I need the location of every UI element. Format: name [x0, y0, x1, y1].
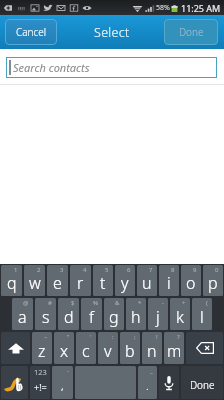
- button[interactable]: $: [58, 298, 79, 330]
- staticText: f: [89, 306, 94, 328]
- staticText: v: [104, 340, 112, 362]
- staticText: k: [176, 306, 184, 328]
- staticText: 4: [83, 266, 87, 274]
- button[interactable]: !: [142, 332, 162, 364]
- staticText: g: [109, 306, 119, 328]
- staticText: w: [29, 272, 41, 294]
- button[interactable]: &: [104, 298, 124, 330]
- staticText: !: [156, 333, 158, 341]
- staticText: ": [67, 333, 70, 341]
- staticText: 7: [149, 266, 153, 274]
- button[interactable]: 123: [30, 366, 50, 399]
- button[interactable]: +: [170, 298, 190, 330]
- staticText: :: [112, 333, 114, 341]
- staticText: 6: [127, 266, 131, 274]
- button[interactable]: @: [12, 298, 33, 330]
- staticText: 3: [60, 266, 64, 274]
- staticText: r: [77, 272, 84, 294]
- staticText: #: [48, 299, 52, 307]
- button[interactable]: 8: [159, 265, 179, 296]
- button[interactable]: _: [138, 366, 157, 399]
- staticText: j: [156, 306, 160, 328]
- staticText: ~: [44, 333, 48, 341]
- staticText: ;: [134, 333, 136, 341]
- staticText: e: [53, 272, 62, 294]
- button[interactable]: ?: [164, 332, 184, 364]
- button[interactable]: Done: [181, 366, 223, 399]
- staticText: 9: [193, 266, 197, 274]
- staticText: y: [121, 272, 129, 294]
- button[interactable]: Done: [164, 19, 218, 45]
- staticText: -: [67, 367, 69, 375]
- staticText: n: [147, 340, 157, 362]
- staticText: %: [93, 299, 98, 307]
- staticText: Select: [94, 24, 130, 41]
- staticText: +: [182, 299, 186, 307]
- button[interactable]: ': [76, 332, 96, 364]
- staticText: u: [142, 272, 152, 294]
- staticText: Search contacts: [13, 60, 90, 75]
- button[interactable]: ": [54, 332, 74, 364]
- staticText: q: [7, 272, 17, 294]
- staticText: t: [100, 272, 106, 294]
- button[interactable]: :: [98, 332, 118, 364]
- staticText: +!=: [34, 381, 47, 393]
- staticText: ': [90, 333, 92, 341]
- staticText: Done: [179, 25, 204, 39]
- staticText: z: [38, 340, 46, 362]
- button[interactable]: Voice input: [159, 366, 179, 399]
- staticText: a: [18, 306, 27, 328]
- staticText: m: [167, 340, 182, 362]
- staticText: *: [138, 299, 142, 307]
- staticText: o: [186, 272, 196, 294]
- button[interactable]: Shift: [1, 332, 30, 364]
- button[interactable]: -: [52, 366, 73, 399]
- button[interactable]: Search contacts: [6, 57, 217, 78]
- staticText: ,: [61, 378, 64, 393]
- staticText: _: [150, 367, 153, 375]
- button[interactable]: #: [35, 298, 56, 330]
- button[interactable]: Backspace: [186, 332, 223, 364]
- button[interactable]: 7: [137, 265, 157, 296]
- button[interactable]: 2: [24, 265, 45, 296]
- staticText: 5: [105, 266, 109, 274]
- staticText: 58%: [156, 3, 170, 13]
- staticText: 2: [37, 266, 41, 274]
- staticText: 1: [14, 266, 18, 274]
- button[interactable]: 5: [93, 265, 113, 296]
- button[interactable]: 6: [115, 265, 135, 296]
- staticText: d: [64, 306, 74, 328]
- button[interactable]: (: [192, 298, 212, 330]
- staticText: l: [200, 306, 204, 328]
- staticText: s: [42, 306, 50, 328]
- staticText: p: [208, 272, 218, 294]
- staticText: $: [71, 299, 75, 307]
- button[interactable]: %: [81, 298, 102, 330]
- staticText: @: [23, 299, 29, 307]
- staticText: Done: [190, 378, 215, 392]
- button[interactable]: 1: [1, 265, 22, 296]
- button[interactable]: ~: [32, 332, 52, 364]
- button[interactable]: 9: [181, 265, 201, 296]
- staticText: 8: [171, 266, 175, 274]
- button[interactable]: 3: [47, 265, 68, 296]
- staticText: .: [146, 378, 149, 393]
- staticText: (: [206, 299, 208, 307]
- staticText: 0: [215, 266, 219, 274]
- staticText: 123: [34, 367, 47, 377]
- staticText: b: [125, 340, 135, 362]
- button[interactable]: Handwriting: [1, 366, 28, 399]
- button[interactable]: 0: [203, 265, 223, 296]
- staticText: 11:25 AM: [181, 2, 221, 14]
- button[interactable]: *: [126, 298, 146, 330]
- staticText: x: [60, 340, 69, 362]
- button[interactable]: -: [148, 298, 168, 330]
- staticText: -: [162, 299, 164, 307]
- staticText: ?: [177, 333, 180, 341]
- staticText: c: [82, 340, 90, 362]
- staticText: h: [131, 306, 141, 328]
- button[interactable]: Cancel: [5, 19, 57, 45]
- button[interactable]: ;: [120, 332, 140, 364]
- button[interactable]: 4: [70, 265, 91, 296]
